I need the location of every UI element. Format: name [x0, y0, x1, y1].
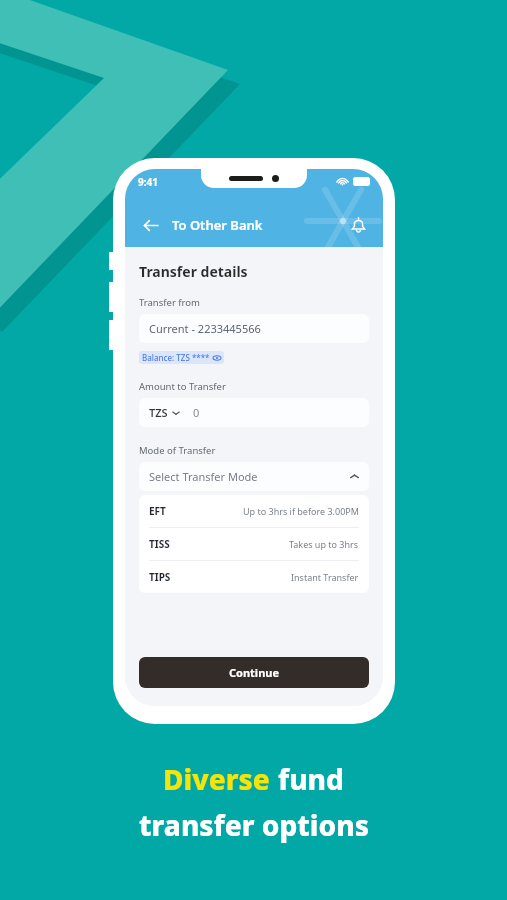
staticText: TISS — [149, 537, 170, 551]
button[interactable]: Current - 2233445566 — [139, 314, 369, 343]
staticText: 9:41 — [138, 175, 158, 189]
button[interactable]: TIPS — [139, 561, 369, 593]
staticText: 0 — [193, 405, 200, 420]
staticText: Instant Transfer — [291, 571, 359, 583]
button[interactable]: EFT — [139, 495, 369, 528]
staticText: Mode of Transfer — [139, 444, 216, 457]
staticText: Continue — [229, 665, 280, 680]
staticText: Transfer from — [139, 296, 200, 309]
button[interactable]: Notifications — [345, 212, 371, 238]
staticText: Balance: TZS **** — [142, 352, 210, 363]
staticText: transfer options — [139, 806, 369, 844]
button[interactable]: TZS — [139, 398, 369, 427]
staticText: Diverse — [163, 760, 278, 798]
staticText: Current - 2233445566 — [149, 321, 261, 336]
staticText: Up to 3hrs if before 3.00PM — [243, 505, 359, 517]
staticText: Transfer details — [139, 262, 248, 281]
staticText: TZS — [149, 405, 168, 420]
staticText: TIPS — [149, 570, 171, 584]
staticText: fund — [278, 760, 344, 798]
staticText: Select Transfer Mode — [149, 469, 258, 484]
button[interactable]: TISS — [139, 528, 369, 561]
staticText: Takes up to 3hrs — [289, 538, 359, 550]
button[interactable]: Back — [137, 212, 163, 238]
staticText: EFT — [149, 504, 166, 518]
button[interactable]: Balance: TZS **** — [139, 351, 224, 364]
staticText: To Other Bank — [172, 216, 263, 234]
button[interactable]: Continue — [139, 657, 369, 688]
button[interactable]: Select Transfer Mode — [139, 462, 369, 491]
staticText: Amount to Transfer — [139, 380, 226, 393]
